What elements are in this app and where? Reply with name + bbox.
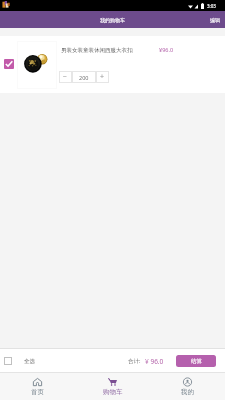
button[interactable]: 增加数量 xyxy=(96,71,109,83)
button[interactable]: 全选 xyxy=(0,357,35,365)
staticText: + xyxy=(100,72,105,82)
staticText: − xyxy=(63,72,68,82)
button[interactable]: 首页 xyxy=(0,373,75,400)
button[interactable]: 编辑 xyxy=(205,14,225,26)
staticText: 购物车 xyxy=(103,388,123,396)
staticText: 结算 xyxy=(191,358,202,365)
staticText: 首页 xyxy=(31,388,44,396)
button[interactable]: 选择商品 xyxy=(4,59,14,69)
staticText: 合计: xyxy=(128,357,141,365)
staticText: ¥ 96.0 xyxy=(145,357,164,366)
button[interactable]: 结算 xyxy=(176,355,216,367)
staticText: ¥96.0 xyxy=(159,46,174,53)
button[interactable]: 减少数量 xyxy=(59,71,72,83)
staticText: 男装女装童装休闲西服大衣扣 xyxy=(61,47,133,54)
staticText: 我的购物车 xyxy=(100,17,125,23)
button[interactable]: 购物车 xyxy=(75,373,150,400)
staticText: 200 xyxy=(79,74,89,81)
staticText: 编辑 xyxy=(210,17,220,23)
staticText: 全选 xyxy=(24,358,35,365)
staticText: 3:03 xyxy=(207,3,216,9)
button[interactable]: 我的 xyxy=(150,373,225,400)
staticText: 我的 xyxy=(181,388,194,396)
